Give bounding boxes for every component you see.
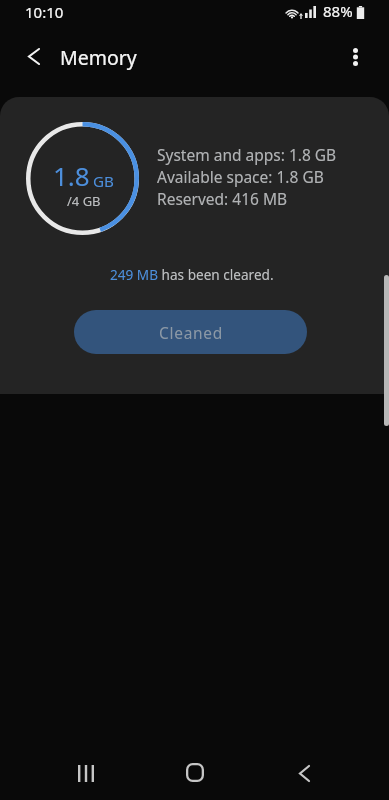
staticText: /4 GB	[67, 192, 101, 210]
button[interactable]: Back	[280, 749, 328, 797]
staticText: 88%	[323, 1, 353, 21]
staticText: Reserved: 416 MB	[157, 188, 288, 210]
staticText: 10:10	[25, 2, 64, 22]
button[interactable]: Recent apps	[62, 749, 110, 797]
button[interactable]: Home	[171, 748, 219, 796]
staticText: 249 MB has been cleared.	[110, 265, 274, 284]
button[interactable]: Navigate up	[12, 34, 56, 78]
staticText: Memory	[60, 44, 137, 71]
staticText: Available space: 1.8 GB	[157, 166, 324, 188]
staticText: GB	[93, 171, 114, 192]
staticText: 1.8	[53, 158, 90, 193]
button[interactable]: More options	[333, 35, 377, 79]
staticText: System and apps: 1.8 GB	[157, 144, 337, 166]
button[interactable]: Cleaned	[74, 310, 307, 354]
staticText: Cleaned	[159, 322, 223, 343]
